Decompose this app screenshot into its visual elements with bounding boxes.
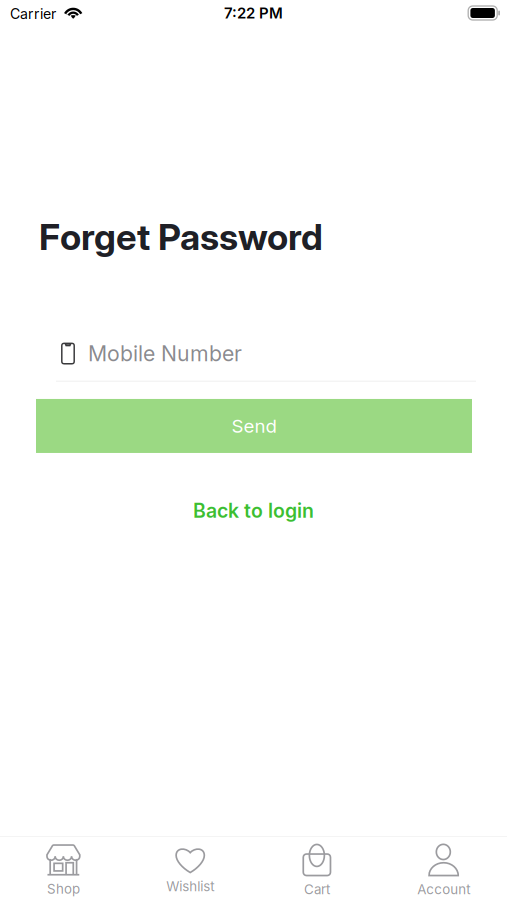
staticText: Mobile Number bbox=[88, 341, 242, 366]
staticText: Send bbox=[231, 415, 276, 437]
staticText: Cart bbox=[304, 881, 330, 897]
button[interactable]: Shop bbox=[0, 837, 127, 900]
button[interactable]: Account bbox=[380, 836, 507, 900]
staticText: Back to login bbox=[193, 499, 314, 523]
button[interactable]: Send bbox=[36, 399, 472, 453]
button[interactable]: Back to login bbox=[193, 499, 314, 523]
button[interactable]: Wishlist bbox=[127, 839, 254, 897]
staticText: Carrier bbox=[10, 5, 56, 22]
staticText: Account bbox=[417, 881, 470, 897]
staticText: Shop bbox=[47, 881, 80, 897]
staticText: Wishlist bbox=[166, 878, 214, 894]
button[interactable]: Cart bbox=[253, 836, 380, 900]
staticText: Forget Password bbox=[39, 215, 323, 259]
staticText: 7:22 PM bbox=[224, 4, 283, 22]
